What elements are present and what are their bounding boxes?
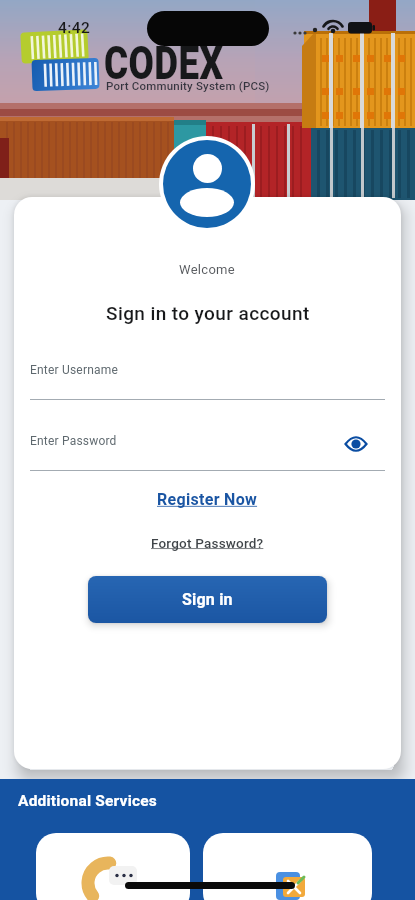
staticText: Additional Services <box>18 792 158 810</box>
staticText: 4:42 <box>58 19 91 37</box>
button[interactable]: Register Now <box>151 488 264 511</box>
staticText: Port Community System (PCS) <box>106 79 270 92</box>
staticText: Forgot Password? <box>151 535 264 551</box>
button[interactable] <box>344 435 368 453</box>
staticText: Welcome <box>179 262 236 277</box>
staticText: Sign in to your account <box>106 302 310 324</box>
button[interactable]: Enter Username <box>30 357 385 403</box>
staticText: CODEX <box>104 36 224 90</box>
staticText: Register Now <box>157 490 258 509</box>
staticText: Enter Password <box>30 434 117 448</box>
button[interactable]: Forgot Password? <box>145 533 270 553</box>
staticText: Sign in <box>182 590 233 609</box>
button[interactable]: Enter Password <box>30 428 385 474</box>
button[interactable] <box>36 833 190 900</box>
button[interactable] <box>203 833 372 900</box>
button[interactable]: Sign in <box>88 576 327 623</box>
staticText: Enter Username <box>30 363 119 377</box>
